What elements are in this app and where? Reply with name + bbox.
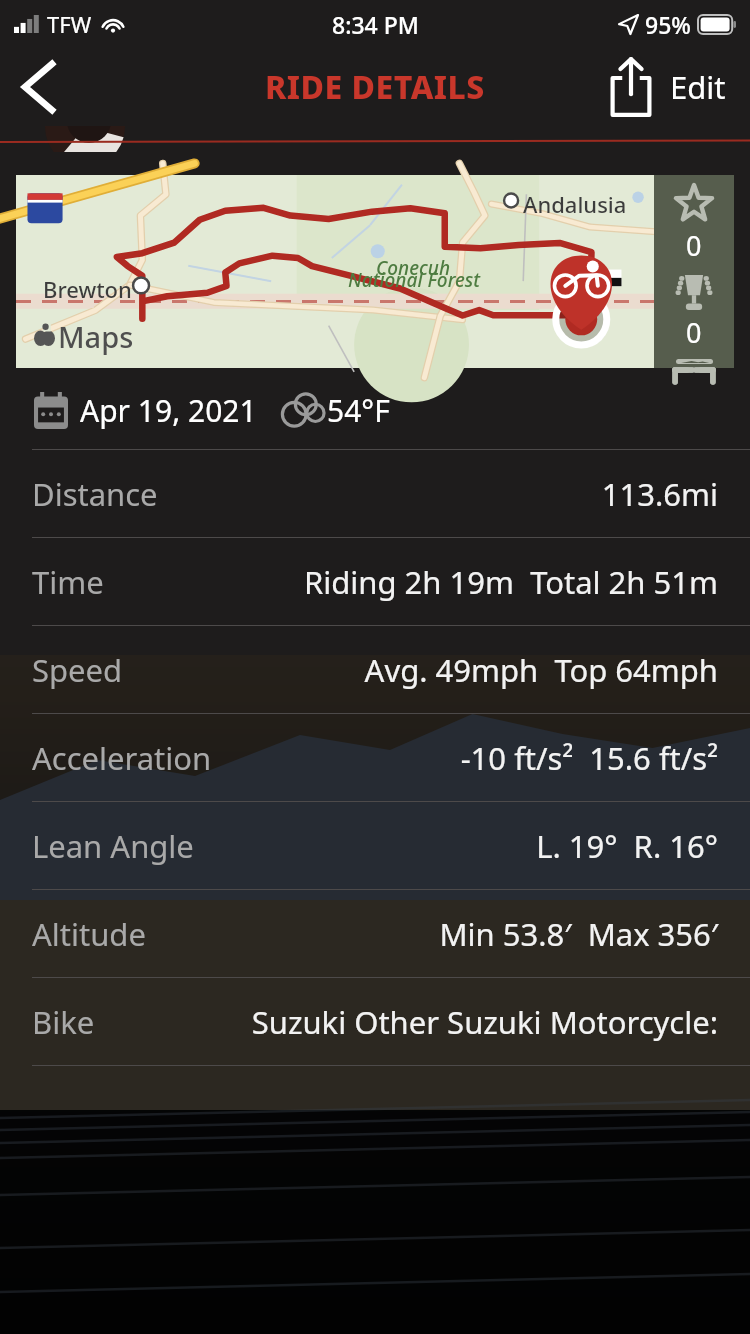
- staticText: Distance: [32, 473, 158, 515]
- staticText: Avg. 49mph Top 64mph: [364, 649, 718, 691]
- button[interactable]: Photos: [672, 355, 717, 368]
- staticText: Suzuki Other Suzuki Motorcycle:: [251, 1001, 718, 1043]
- staticText: 95%: [645, 9, 691, 40]
- button[interactable]: Brewton: [16, 175, 734, 368]
- staticText: Maps: [58, 317, 134, 356]
- staticText: Lean Angle: [32, 825, 194, 867]
- button[interactable]: Share: [594, 50, 668, 124]
- staticText: RIDE DETAILS: [265, 65, 485, 109]
- staticText: Edit: [670, 66, 726, 108]
- staticText: Acceleration: [32, 737, 212, 779]
- staticText: Bike: [32, 1001, 95, 1043]
- staticText: -10 ft/s² 15.6 ft/s²: [460, 737, 718, 779]
- button[interactable]: Back: [0, 49, 76, 125]
- button[interactable]: Distance: [0, 450, 750, 537]
- staticText: Speed: [32, 649, 123, 691]
- staticText: Altitude: [32, 913, 146, 955]
- button[interactable]: Edit: [670, 48, 726, 126]
- staticText: 0: [686, 227, 702, 264]
- staticText: 8:34 PM: [332, 9, 419, 40]
- staticText: National Forest: [348, 267, 480, 293]
- button[interactable]: Favorite: [671, 181, 717, 227]
- staticText: 54°F: [327, 390, 390, 431]
- button[interactable]: Time: [0, 538, 750, 625]
- staticText: 0: [686, 314, 702, 351]
- staticText: L. 19° R. 16°: [536, 825, 718, 867]
- button[interactable]: Speed: [0, 626, 750, 713]
- button[interactable]: Lean Angle: [0, 802, 750, 889]
- staticText: Time: [32, 561, 104, 603]
- staticText: Riding 2h 19m Total 2h 51m: [303, 561, 718, 603]
- button[interactable]: Achievements: [668, 268, 720, 314]
- staticText: Min 53.8′ Max 356′: [439, 913, 718, 955]
- staticText: TFW: [47, 9, 92, 39]
- button[interactable]: Acceleration: [0, 714, 750, 801]
- button[interactable]: Altitude: [0, 890, 750, 977]
- staticText: Conecuh: [376, 255, 451, 281]
- staticText: Andalusia: [523, 189, 627, 219]
- button[interactable]: Bike: [0, 978, 750, 1065]
- staticText: 113.6mi: [601, 473, 718, 515]
- staticText: Apr 19, 2021: [80, 390, 257, 431]
- staticText: Brewton: [43, 274, 132, 304]
